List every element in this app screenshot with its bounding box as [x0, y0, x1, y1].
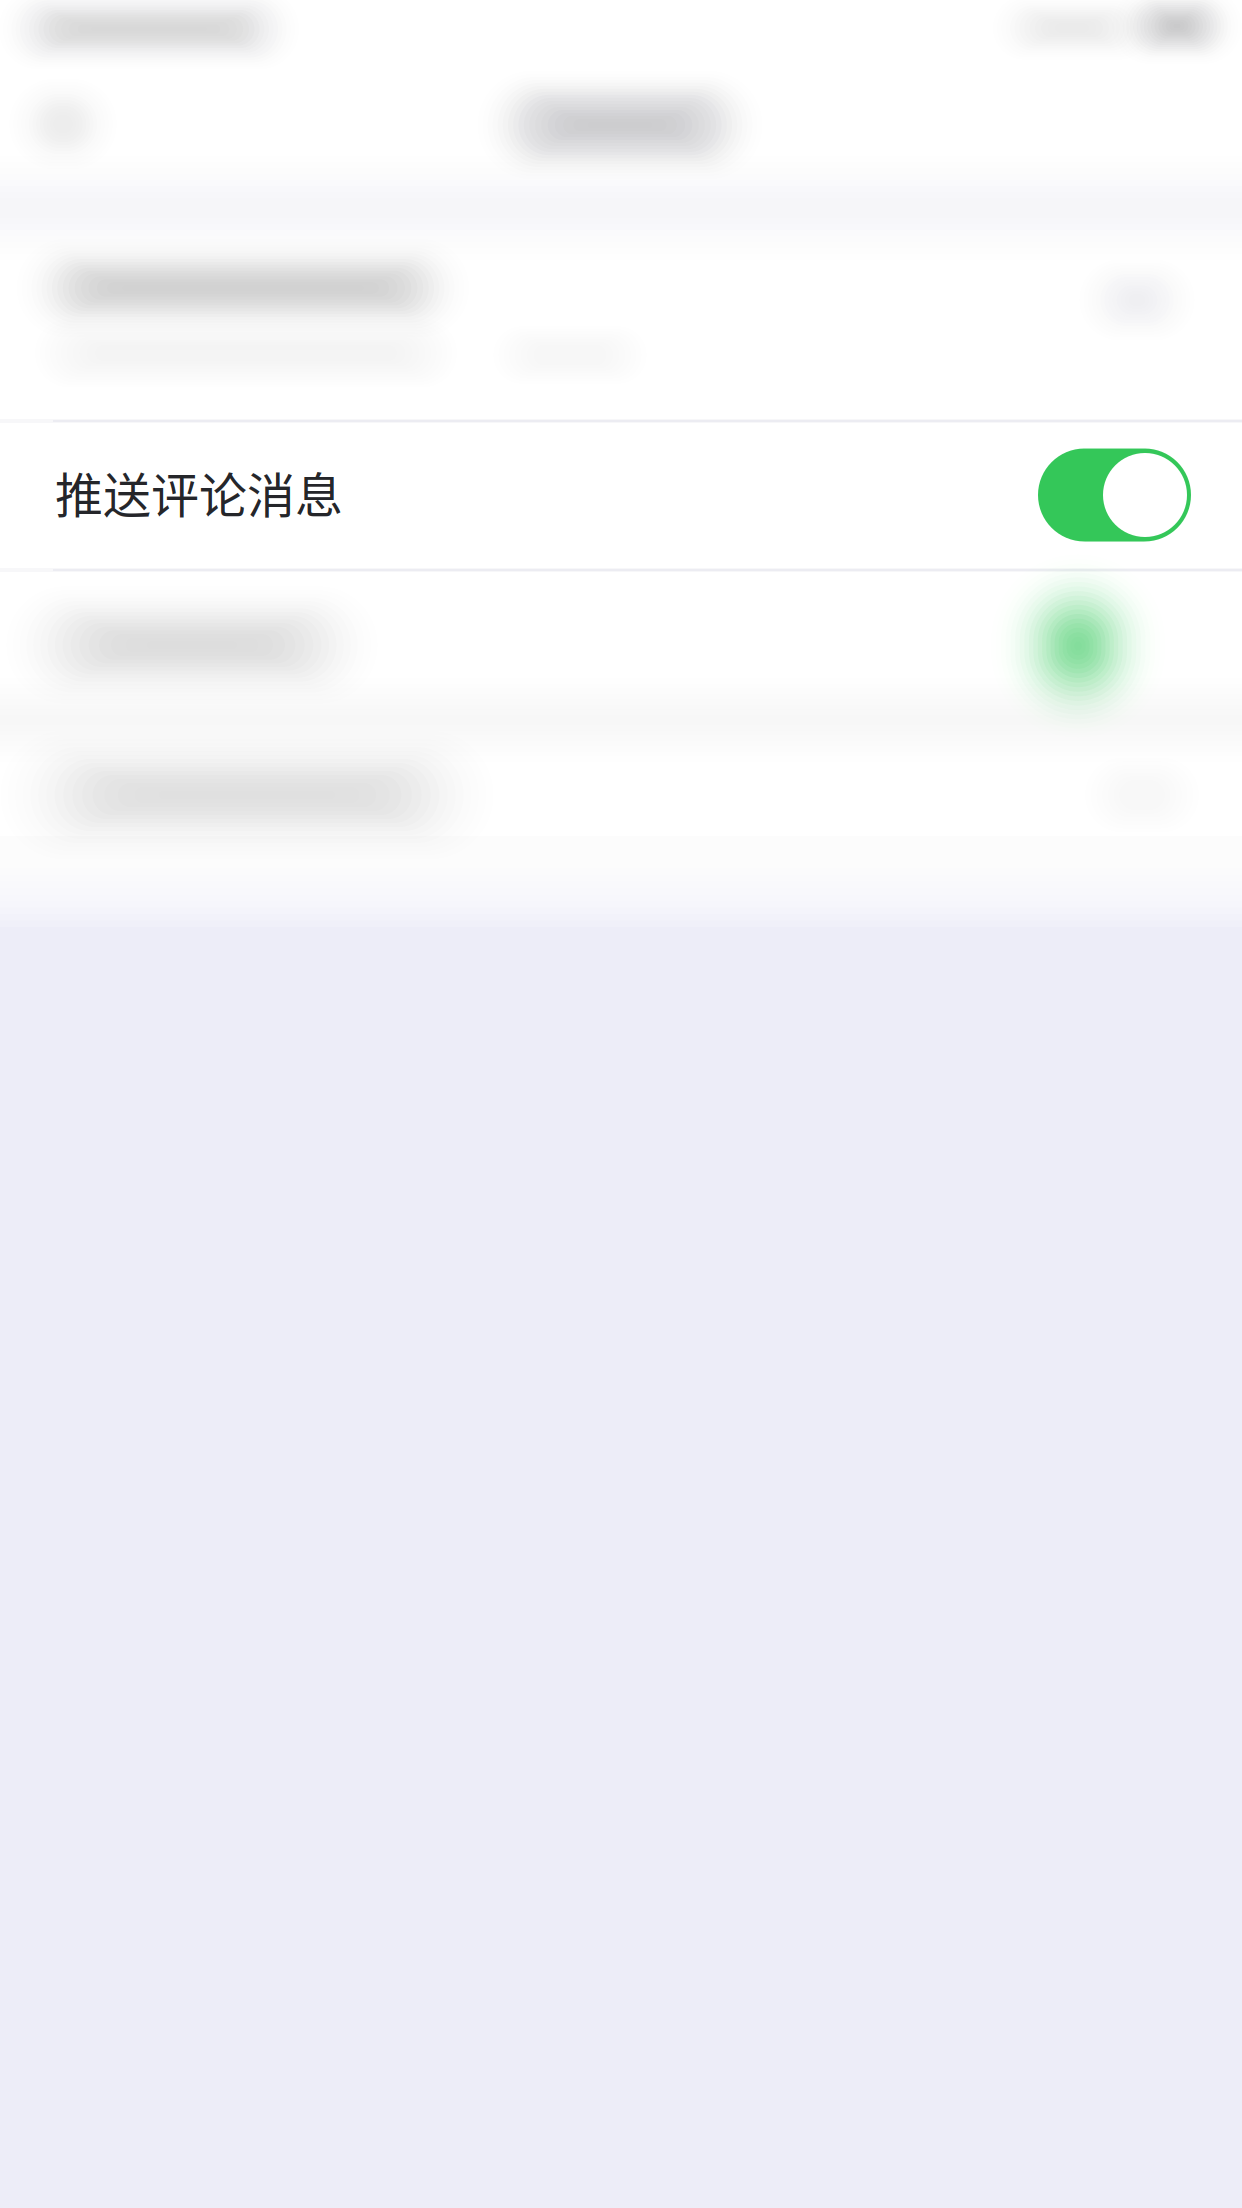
staticText: 推送评论消息: [55, 457, 343, 527]
button[interactable]: [0, 230, 1242, 420]
button[interactable]: [0, 569, 1242, 718]
button[interactable]: 推送评论消息: [0, 418, 1242, 565]
button[interactable]: Back: [0, 65, 140, 185]
button[interactable]: [0, 717, 1242, 872]
